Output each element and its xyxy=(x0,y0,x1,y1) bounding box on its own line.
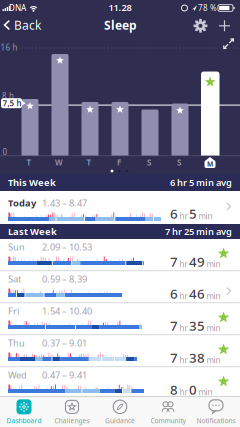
staticText: Thu xyxy=(8,337,25,349)
staticText: 38 xyxy=(189,349,205,366)
staticText: This Week xyxy=(8,176,56,189)
button[interactable]: Settings xyxy=(192,18,208,34)
staticText: 6 xyxy=(170,205,178,222)
button[interactable]: Thu xyxy=(0,335,240,367)
staticText: min xyxy=(198,387,212,397)
staticText: Dashboard xyxy=(6,416,41,425)
button[interactable]: Fri xyxy=(0,303,240,335)
staticText: T xyxy=(86,157,91,168)
button[interactable]: Challenges xyxy=(48,397,96,427)
button[interactable]: Wed xyxy=(0,367,240,399)
staticText: min xyxy=(206,259,220,269)
staticText: 78 % xyxy=(198,3,217,13)
staticText: Back xyxy=(14,17,41,33)
button[interactable]: Notifications xyxy=(192,397,240,427)
staticText: Sun xyxy=(8,241,25,253)
staticText: 11.28 xyxy=(108,1,131,14)
staticText: Challenges xyxy=(54,416,89,425)
staticText: 7,5 h xyxy=(2,98,21,108)
staticText: 0 xyxy=(2,147,7,157)
staticText: hr xyxy=(179,323,187,333)
staticText: 16 h xyxy=(0,42,17,53)
staticText: Today xyxy=(8,197,36,209)
staticText: 0.59 – 8.39 xyxy=(42,273,87,285)
staticText: 46 xyxy=(189,285,205,302)
staticText: hr xyxy=(179,387,187,397)
staticText: 2.09 – 10.53 xyxy=(42,241,92,253)
staticText: hr xyxy=(179,211,187,221)
staticText: 0.47 – 9.41 xyxy=(42,369,87,381)
staticText: hr xyxy=(179,259,187,269)
staticText: 7 xyxy=(170,253,178,270)
staticText: Sat xyxy=(8,273,21,285)
staticText: W xyxy=(55,157,63,168)
staticText: Last Week xyxy=(8,225,57,238)
staticText: 7 xyxy=(170,317,178,334)
staticText: M xyxy=(207,160,213,168)
staticText: T xyxy=(26,157,31,168)
staticText: DNA xyxy=(9,3,26,13)
staticText: 8 xyxy=(170,381,178,398)
staticText: 1.43 – 8.47 xyxy=(42,197,87,209)
staticText: 8 h xyxy=(2,91,14,101)
staticText: 1.54 – 10.40 xyxy=(42,305,92,317)
staticText: Notifications xyxy=(196,416,235,425)
staticText: 7 hr 25 min avg xyxy=(165,225,232,238)
staticText: 6 xyxy=(170,285,178,302)
staticText: Guidance xyxy=(105,416,135,425)
button[interactable]: Community xyxy=(144,397,192,427)
staticText: min xyxy=(206,323,220,333)
button[interactable]: Today xyxy=(0,191,240,224)
staticText: 49 xyxy=(189,253,205,270)
staticText: Sleep xyxy=(104,17,137,33)
staticText: 0.37 – 9.01 xyxy=(42,337,87,349)
button[interactable]: Sun xyxy=(0,239,240,271)
staticText: Fri xyxy=(8,305,19,317)
staticText: hr xyxy=(179,291,187,301)
staticText: Wed xyxy=(8,369,27,381)
button[interactable]: Sat xyxy=(0,271,240,303)
staticText: min xyxy=(198,211,212,221)
button[interactable]: Back xyxy=(3,18,45,32)
staticText: min xyxy=(206,355,220,365)
staticText: 35 xyxy=(189,317,205,334)
button[interactable]: Expand chart xyxy=(223,38,234,47)
staticText: S xyxy=(147,157,151,168)
staticText: 7 xyxy=(170,349,178,366)
staticText: S xyxy=(177,157,181,168)
staticText: min xyxy=(206,291,220,301)
staticText: F xyxy=(117,157,121,168)
staticText: Community xyxy=(150,416,185,425)
staticText: 0 xyxy=(189,381,197,398)
button[interactable]: Add sleep log xyxy=(216,18,232,34)
staticText: 6 hr 5 min avg xyxy=(170,176,232,189)
staticText: hr xyxy=(179,355,187,365)
button[interactable]: Dashboard xyxy=(0,397,48,427)
button[interactable]: Guidance xyxy=(96,397,144,427)
staticText: 5 xyxy=(189,205,197,222)
